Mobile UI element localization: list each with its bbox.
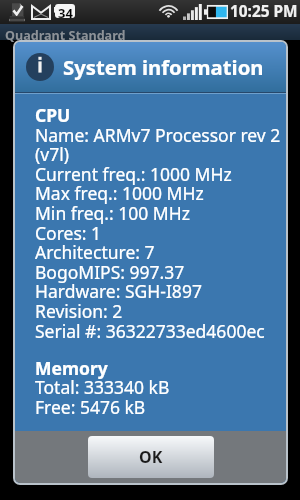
staticText: Quadrant Standard xyxy=(5,27,126,43)
staticText: Total: 333340 kB xyxy=(35,375,170,399)
staticText: 34 xyxy=(58,4,73,18)
other: Information xyxy=(26,53,54,81)
staticText: OK xyxy=(139,446,163,468)
staticText: Revision: 2 xyxy=(35,299,123,323)
staticText: Memory xyxy=(35,356,108,380)
staticText: System information xyxy=(63,53,264,81)
staticText: (v7l) xyxy=(35,142,69,166)
staticText: Serial #: 36322733ed4600ec xyxy=(35,319,265,343)
staticText: Current freq.: 1000 MHz xyxy=(35,162,232,186)
staticText: Max freq.: 1000 MHz xyxy=(35,181,204,205)
staticText: 10:25 PM xyxy=(230,1,298,22)
staticText: CPU xyxy=(35,103,71,127)
staticText: Architecture: 7 xyxy=(35,240,155,264)
staticText: Cores: 1 xyxy=(35,221,102,245)
staticText: Hardware: SGH-I897 xyxy=(35,279,202,303)
button[interactable]: OK xyxy=(88,436,214,478)
staticText: BogoMIPS: 997.37 xyxy=(35,260,185,284)
staticText: Min freq.: 100 MHz xyxy=(35,201,190,225)
staticText: Name: ARMv7 Processor rev 2 xyxy=(35,123,281,147)
staticText: Free: 5476 kB xyxy=(35,395,146,419)
